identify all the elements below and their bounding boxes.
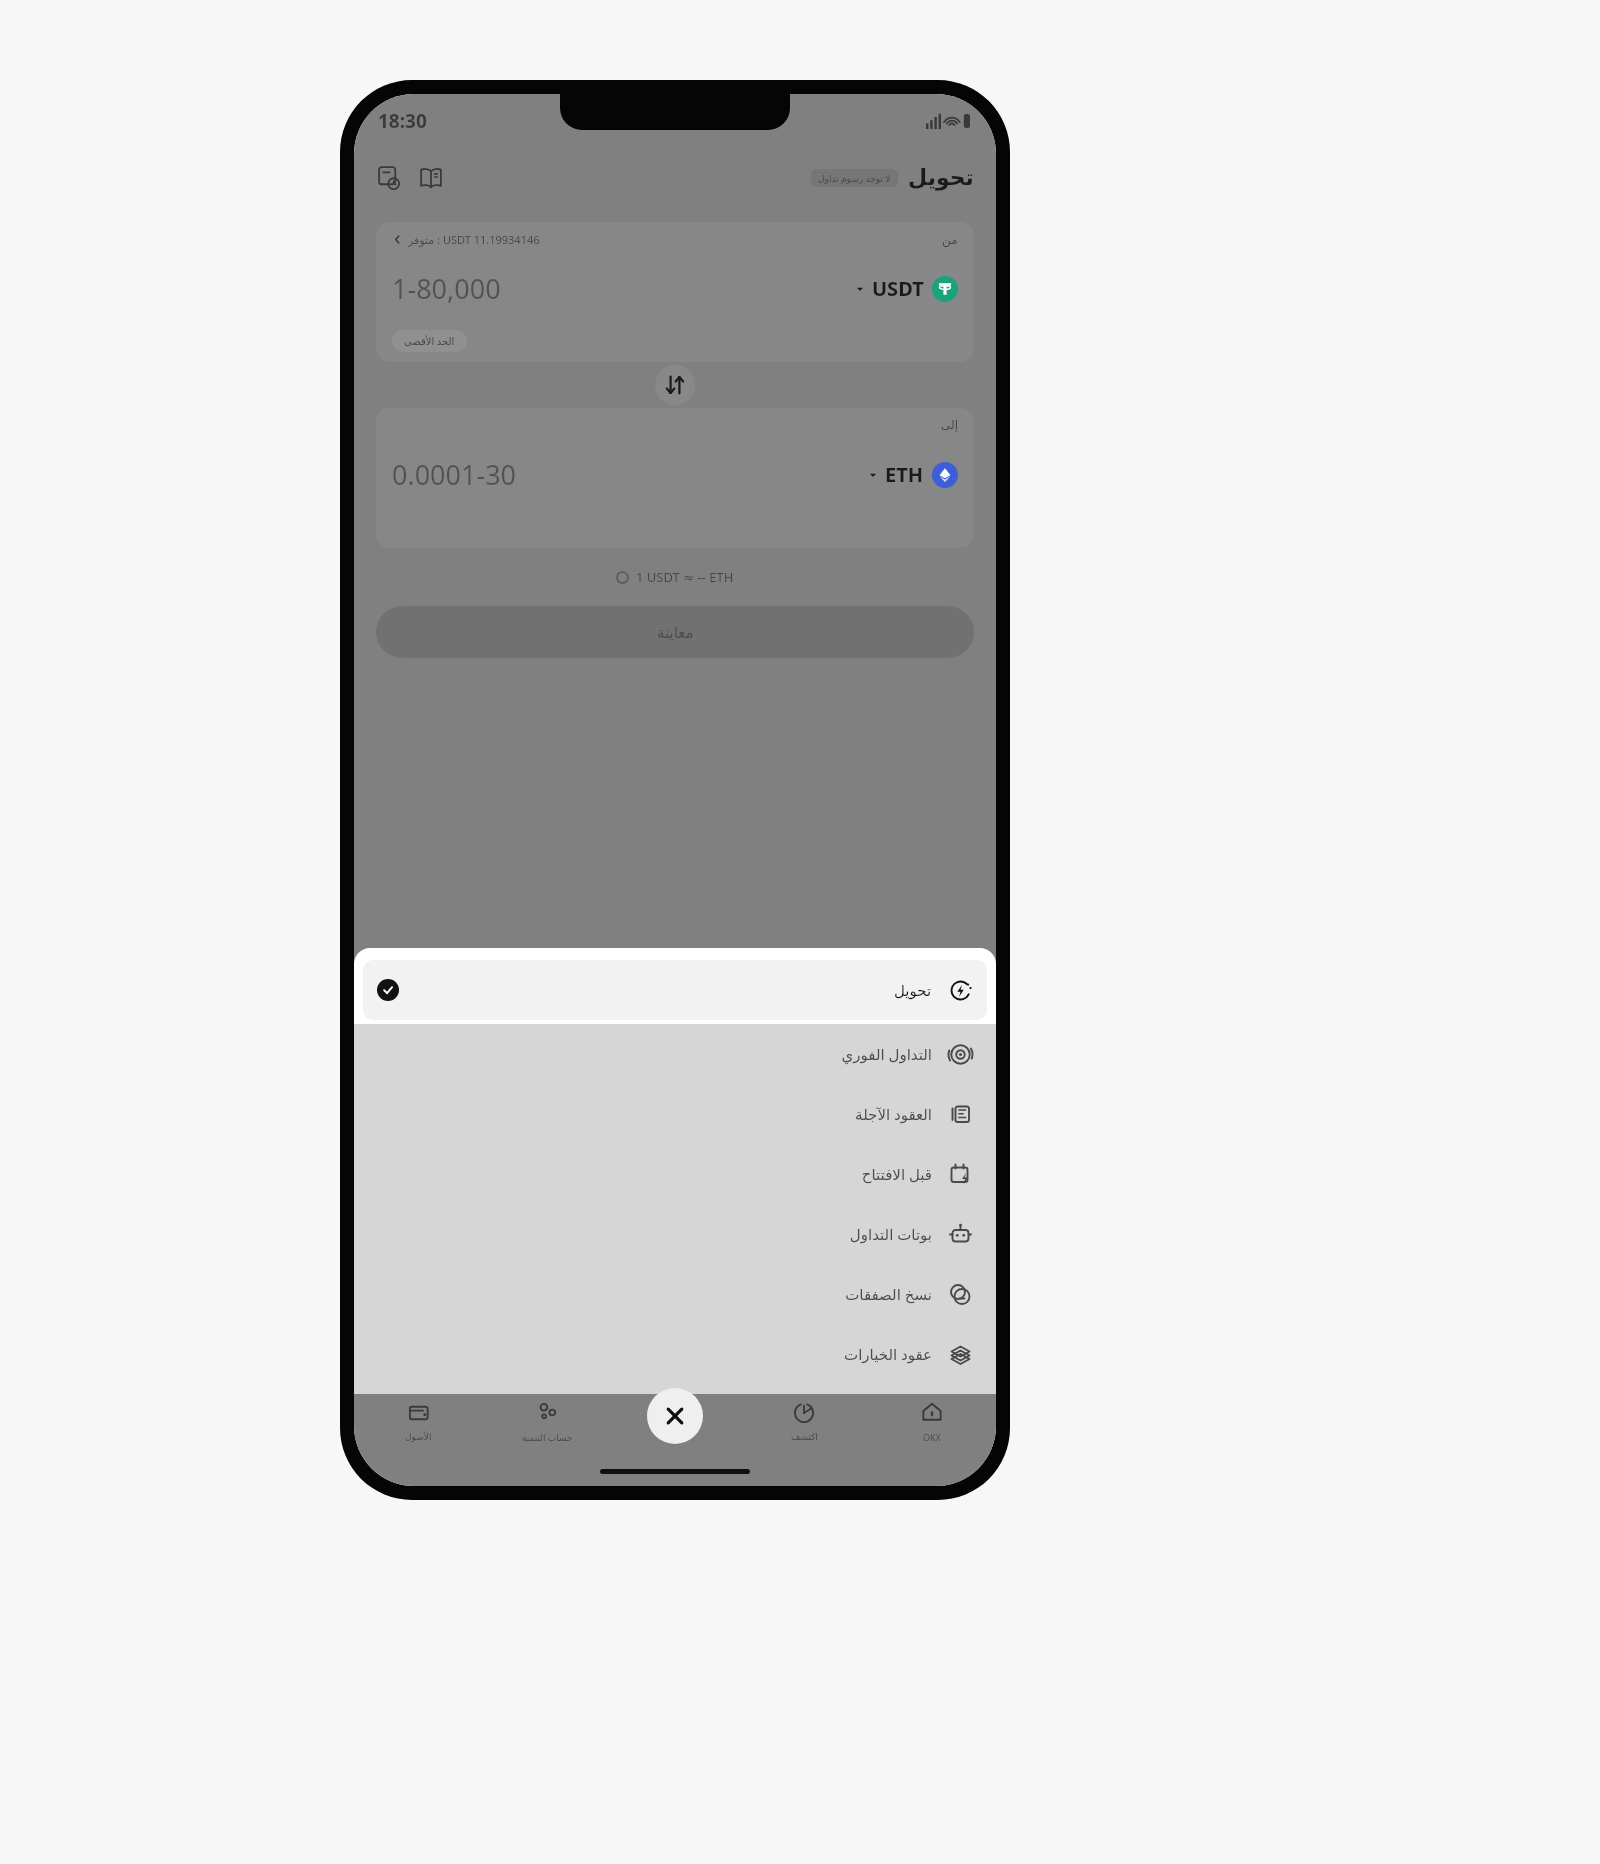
staticText: التداول الفوري bbox=[841, 1044, 932, 1064]
staticText: متوفر : USDT 11.19934146 bbox=[408, 232, 540, 247]
staticText: اكتشف bbox=[791, 1432, 818, 1442]
button[interactable]: ETH bbox=[869, 461, 958, 488]
staticText: نسخ الصفقات bbox=[845, 1284, 932, 1304]
staticText: 1-80,000 bbox=[392, 270, 501, 307]
staticText: لا توجد رسوم تداول bbox=[818, 172, 891, 184]
staticText: قبل الافتتاح bbox=[861, 1164, 932, 1184]
button[interactable]: متوفر : USDT 11.19934146 bbox=[376, 222, 974, 362]
button[interactable]: USDT bbox=[856, 275, 958, 302]
staticText: إلى bbox=[941, 418, 958, 432]
button[interactable]: الحد الأقصى bbox=[404, 334, 455, 348]
button[interactable]: قبل الافتتاح bbox=[354, 1144, 996, 1204]
staticText: العقود الآجلة bbox=[855, 1104, 932, 1124]
staticText: ETH bbox=[885, 461, 924, 488]
staticText: من bbox=[942, 233, 958, 247]
button[interactable]: Guide bbox=[418, 165, 444, 191]
button[interactable]: تداول bbox=[612, 1386, 740, 1456]
staticText: بوتات التداول bbox=[849, 1224, 932, 1244]
staticText: عقود الخيارات bbox=[844, 1344, 932, 1364]
button[interactable]: العقود الآجلة bbox=[354, 1084, 996, 1144]
staticText: معاينة bbox=[657, 624, 694, 641]
staticText: تحويل bbox=[894, 982, 932, 999]
staticText: الحد الأقصى bbox=[404, 334, 455, 348]
button[interactable]: التداول الفوري bbox=[354, 1024, 996, 1084]
button[interactable]: Swap direction bbox=[655, 365, 695, 405]
staticText: 1 USDT ≈ -- ETH bbox=[636, 568, 734, 586]
button[interactable]: بوتات التداول bbox=[354, 1204, 996, 1264]
staticText: تحويل bbox=[908, 165, 974, 191]
staticText: 0.0001-30 bbox=[392, 456, 517, 493]
staticText: الأصول bbox=[405, 1432, 432, 1442]
staticText: OKX bbox=[923, 1431, 941, 1443]
button[interactable]: نسخ الصفقات bbox=[354, 1264, 996, 1324]
button[interactable]: حساب التنمية bbox=[483, 1386, 612, 1456]
button[interactable]: إلى bbox=[376, 408, 974, 548]
button[interactable]: OKX bbox=[868, 1386, 996, 1456]
button[interactable]: Close bbox=[647, 1388, 703, 1444]
button[interactable]: تحويل bbox=[363, 960, 987, 1020]
button[interactable]: اكتشف bbox=[740, 1386, 868, 1456]
staticText: 18:30 bbox=[378, 108, 427, 134]
button[interactable]: لا توجد رسوم تداول bbox=[818, 172, 891, 184]
button[interactable]: عقود الخيارات bbox=[354, 1324, 996, 1384]
staticText: USDT bbox=[872, 275, 924, 302]
button[interactable]: الأصول bbox=[354, 1386, 483, 1456]
staticText: حساب التنمية bbox=[522, 1431, 573, 1443]
staticText: تداول bbox=[666, 1432, 687, 1442]
button[interactable]: History bbox=[376, 165, 402, 191]
